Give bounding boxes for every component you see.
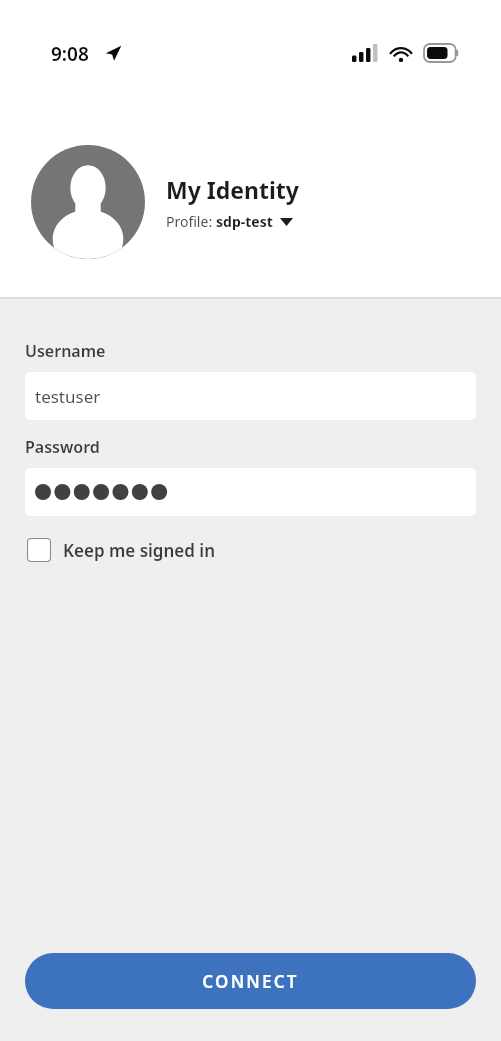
button[interactable]: Keep me signed in: [25, 534, 217, 566]
button[interactable]: CONNECT: [25, 953, 476, 1009]
button[interactable]: My Identity: [0, 86, 501, 299]
button[interactable]: [25, 468, 476, 516]
staticText: CONNECT: [202, 970, 299, 993]
staticText: testuser: [35, 385, 101, 408]
staticText: 9:08: [51, 41, 89, 67]
staticText: Username: [25, 340, 106, 362]
staticText: Profile:: [166, 212, 216, 231]
staticText: Password: [25, 436, 100, 458]
staticText: sdp-test: [216, 212, 273, 231]
button[interactable]: testuser: [25, 372, 476, 420]
staticText: My Identity: [166, 174, 299, 205]
staticText: Keep me signed in: [63, 539, 215, 562]
